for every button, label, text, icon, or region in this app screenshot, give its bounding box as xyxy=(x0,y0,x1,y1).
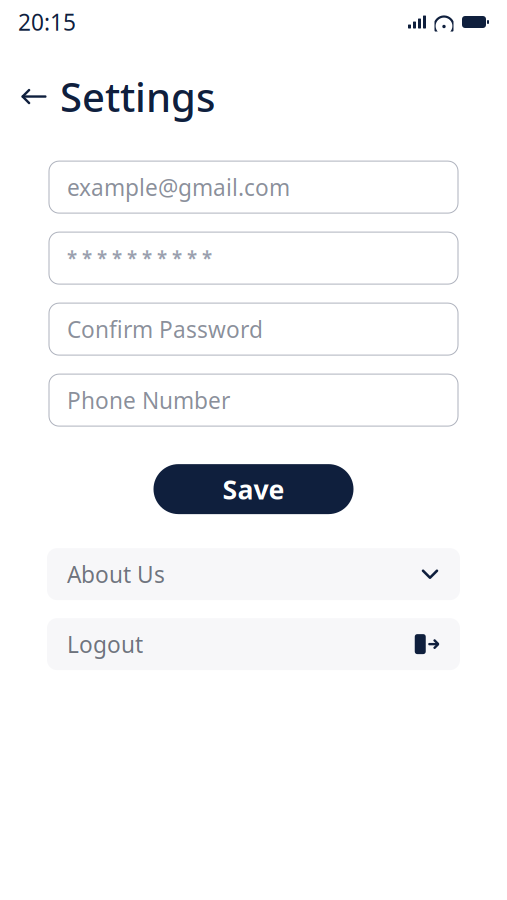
button[interactable]: Back to Settings xyxy=(0,44,235,133)
staticText: Settings xyxy=(60,70,215,123)
staticText: * * * * * * * * * * xyxy=(67,246,212,270)
staticText: Save xyxy=(222,471,284,507)
button[interactable]: Logout xyxy=(47,618,460,670)
staticText: 20:15 xyxy=(18,7,76,37)
staticText: About Us xyxy=(67,559,165,589)
staticText: Logout xyxy=(67,629,143,659)
staticText: Confirm Password xyxy=(67,314,263,344)
button[interactable]: About Us xyxy=(47,548,460,600)
button[interactable]: Save xyxy=(153,464,353,514)
staticText: example@gmail.com xyxy=(67,172,290,202)
staticText: Phone Number xyxy=(67,385,230,415)
